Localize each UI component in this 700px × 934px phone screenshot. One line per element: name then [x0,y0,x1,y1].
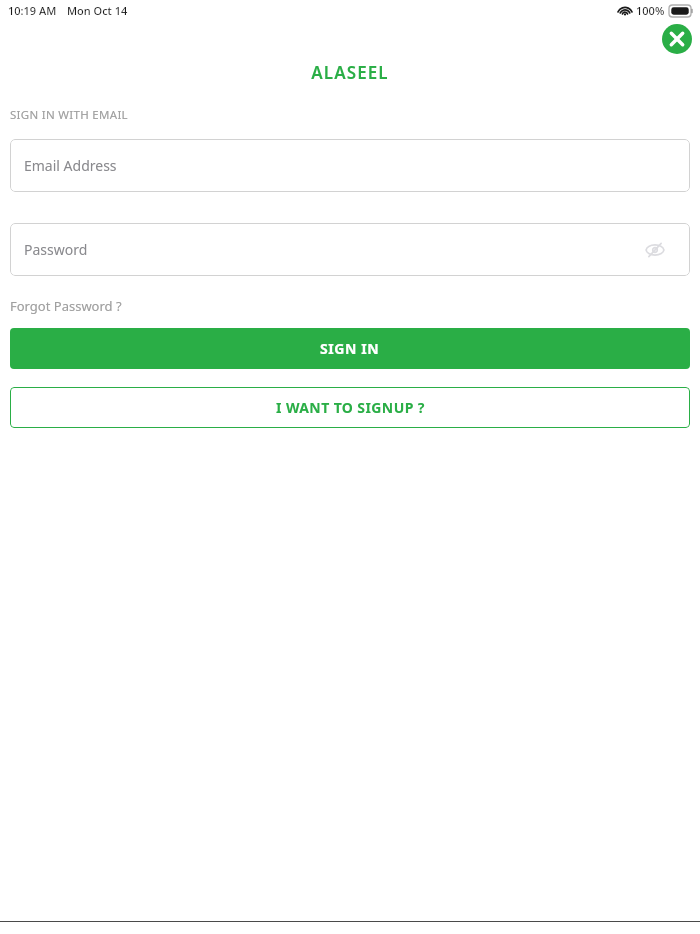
button[interactable]: Password [10,223,690,276]
staticText: Email Address [24,156,117,175]
staticText: Password [24,240,88,259]
button[interactable]: Email Address [10,139,690,192]
button[interactable]: Close [662,24,692,54]
staticText: I WANT TO SIGNUP ? [276,398,425,417]
staticText: ALASEEL [311,61,389,84]
staticText: Forgot Password ? [10,297,122,315]
button[interactable]: I WANT TO SIGNUP ? [10,387,690,428]
button[interactable]: Show password [644,239,666,261]
button[interactable]: Forgot Password ? [10,297,122,315]
staticText: 100% [636,3,665,18]
staticText: Mon Oct 14 [67,3,128,18]
staticText: SIGN IN [320,339,380,358]
staticText: SIGN IN WITH EMAIL [10,107,128,123]
button[interactable]: SIGN IN [10,328,690,369]
staticText: 10:19 AM [8,3,57,18]
